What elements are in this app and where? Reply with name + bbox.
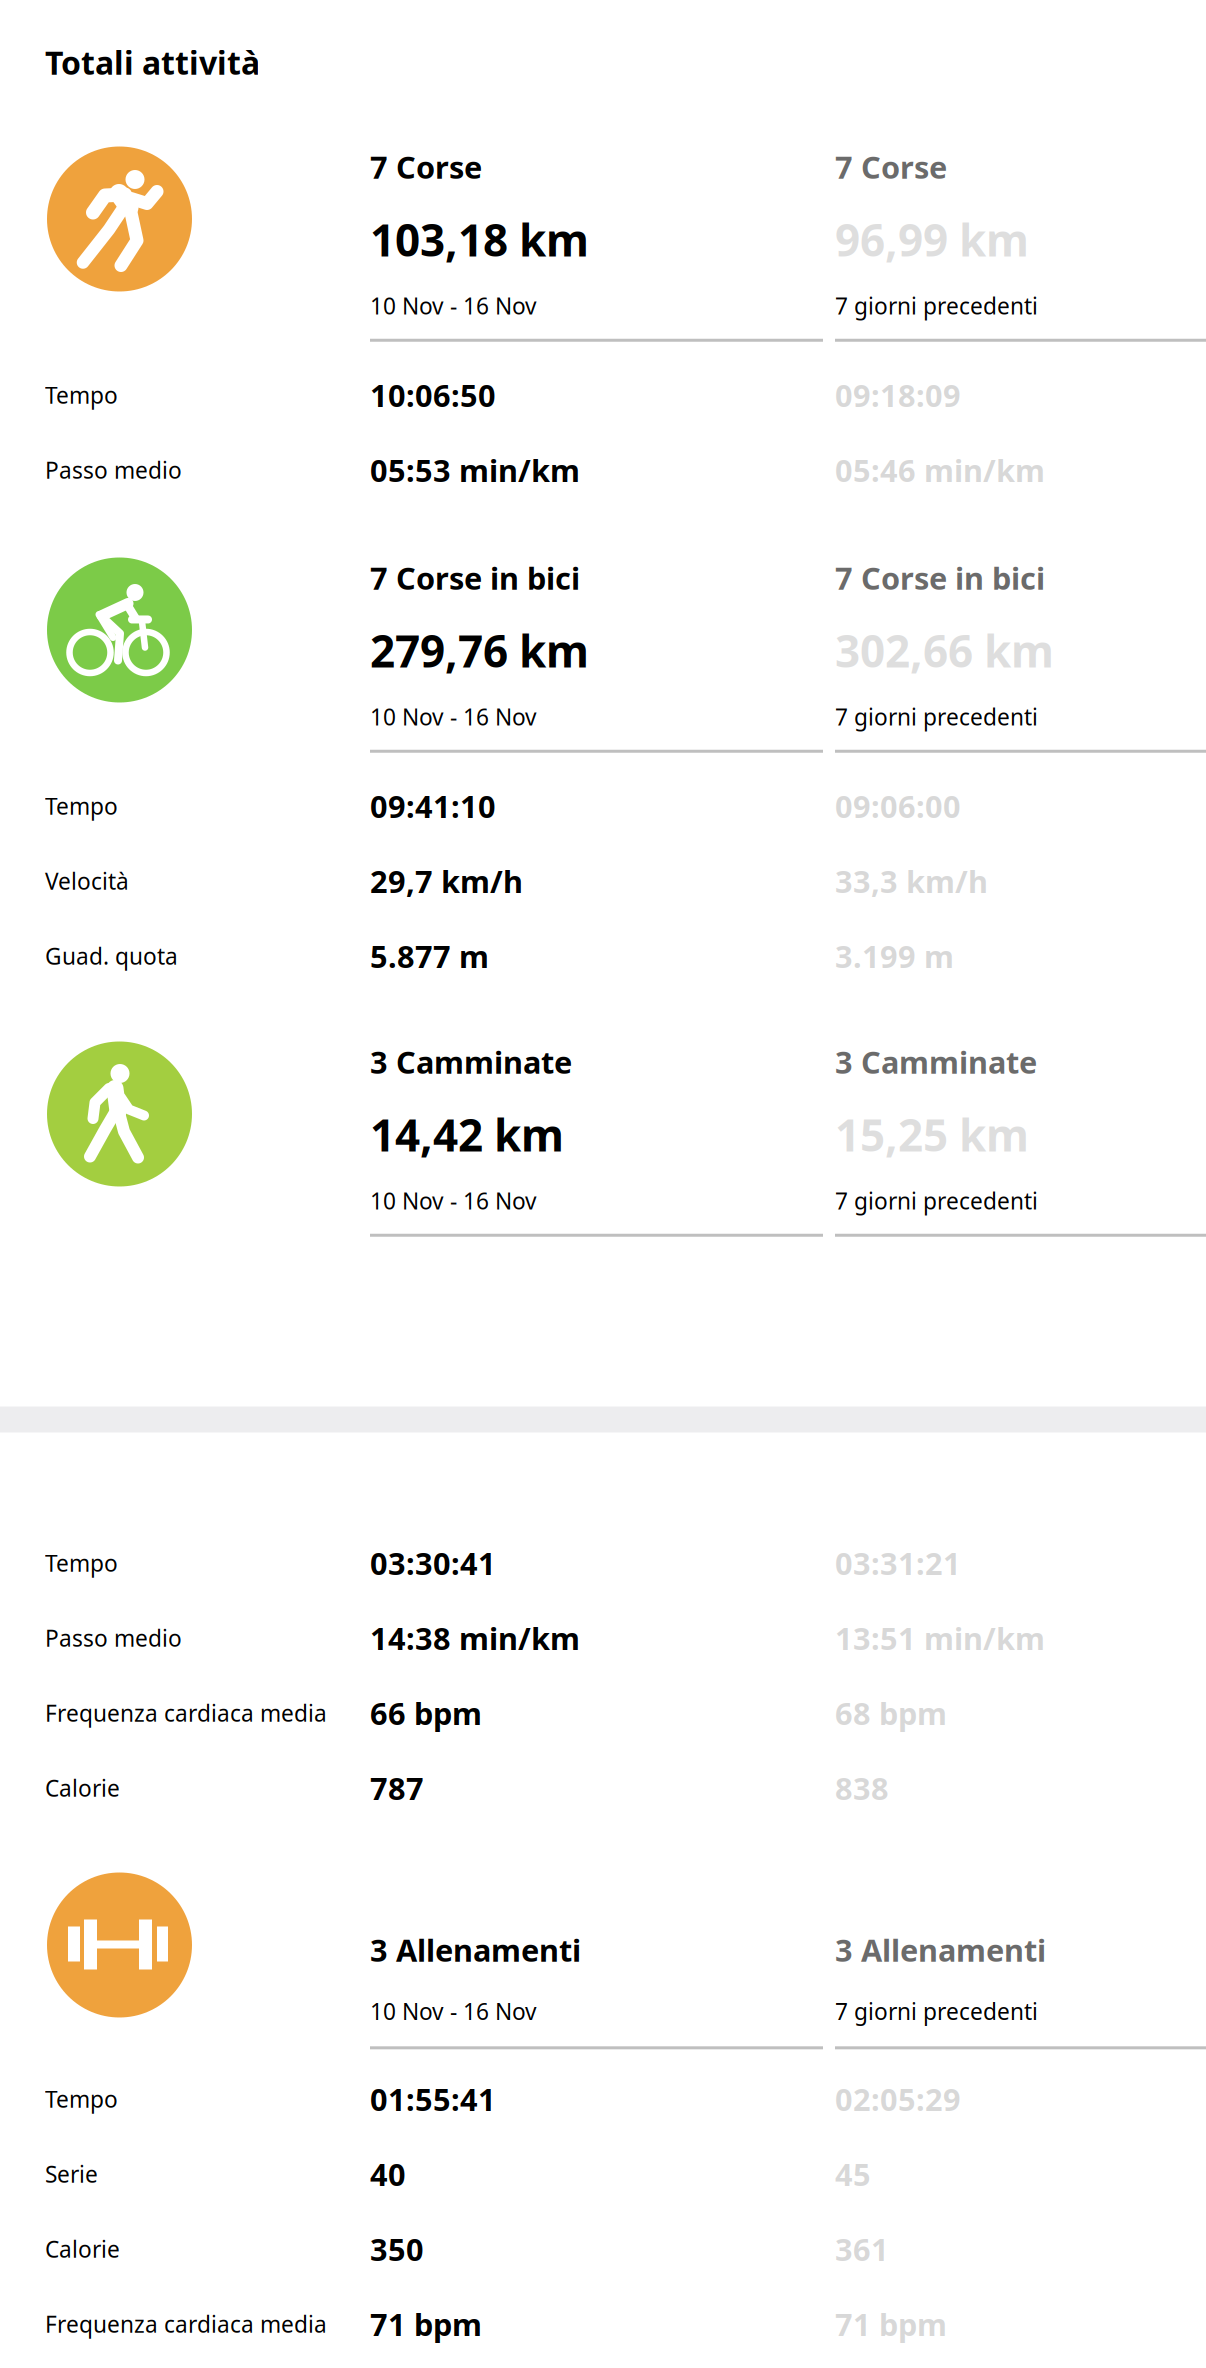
staticText: 10 Nov - 16 Nov: [370, 1996, 537, 2026]
staticText: 66 bpm: [370, 1693, 482, 1733]
staticText: 03:30:41: [370, 1543, 496, 1583]
staticText: Tempo: [45, 1548, 118, 1578]
staticText: 10:06:50: [370, 375, 496, 415]
staticText: 838: [835, 1768, 889, 1808]
staticText: 14,42 km: [370, 1105, 564, 1164]
staticText: 7 giorni precedenti: [835, 1186, 1038, 1216]
button[interactable]: Frequenza cardiaca media: [0, 2286, 1206, 2361]
button[interactable]: Guad. quota: [0, 918, 1206, 993]
button[interactable]: Calorie: [0, 2211, 1206, 2286]
staticText: 09:41:10: [370, 786, 496, 826]
staticText: 7 Corse: [370, 146, 482, 187]
staticText: Passo medio: [45, 455, 182, 485]
button[interactable]: Frequenza cardiaca media: [0, 1675, 1206, 1750]
staticText: 302,66 km: [835, 621, 1054, 680]
staticText: 29,7 km/h: [370, 861, 523, 901]
staticText: 7 Corse: [835, 146, 947, 187]
staticText: Passo medio: [45, 1623, 182, 1653]
button[interactable]: Tempo: [0, 2061, 1206, 2136]
staticText: 13:51 min/km: [835, 1618, 1045, 1658]
staticText: Tempo: [45, 380, 118, 410]
staticText: 787: [370, 1768, 424, 1808]
staticText: 103,18 km: [370, 210, 589, 269]
staticText: 33,3 km/h: [835, 861, 988, 901]
staticText: 09:18:09: [835, 375, 961, 415]
staticText: 15,25 km: [835, 1105, 1029, 1164]
staticText: 279,76 km: [370, 621, 589, 680]
button[interactable]: Passo medio: [0, 432, 1206, 507]
staticText: 71 bpm: [835, 2304, 947, 2344]
staticText: Calorie: [45, 2234, 120, 2264]
staticText: 01:55:41: [370, 2079, 496, 2119]
button[interactable]: Serie: [0, 2136, 1206, 2211]
staticText: 71 bpm: [370, 2304, 482, 2344]
staticText: 3 Allenamenti: [370, 1929, 581, 1970]
staticText: Calorie: [45, 1773, 120, 1803]
staticText: 3.199 m: [835, 936, 954, 976]
staticText: 10 Nov - 16 Nov: [370, 702, 537, 732]
staticText: 7 giorni precedenti: [835, 702, 1038, 732]
staticText: 5.877 m: [370, 936, 489, 976]
staticText: 14:38 min/km: [370, 1618, 580, 1658]
staticText: 7 Corse in bici: [370, 557, 580, 598]
staticText: Serie: [45, 2159, 98, 2189]
button[interactable]: Tempo: [0, 1525, 1206, 1600]
staticText: 361: [835, 2229, 889, 2269]
staticText: Velocità: [45, 866, 129, 896]
button[interactable]: Passo medio: [0, 1600, 1206, 1675]
button[interactable]: Tempo: [0, 357, 1206, 432]
staticText: Tempo: [45, 2084, 118, 2114]
staticText: Totali attività: [45, 41, 260, 83]
staticText: Frequenza cardiaca media: [45, 1698, 327, 1728]
staticText: 3 Camminate: [370, 1041, 572, 1082]
staticText: 05:46 min/km: [835, 450, 1045, 490]
staticText: 09:06:00: [835, 786, 961, 826]
staticText: 02:05:29: [835, 2079, 961, 2119]
staticText: Tempo: [45, 791, 118, 821]
staticText: 45: [835, 2154, 871, 2194]
button[interactable]: 7 Corse: [0, 146, 1206, 357]
staticText: 3 Camminate: [835, 1041, 1037, 1082]
staticText: Guad. quota: [45, 941, 178, 971]
staticText: 03:31:21: [835, 1543, 961, 1583]
staticText: 10 Nov - 16 Nov: [370, 291, 537, 321]
button[interactable]: 3 Allenamenti: [0, 1872, 1206, 2061]
staticText: 7 giorni precedenti: [835, 1996, 1038, 2026]
button[interactable]: Tempo: [0, 768, 1206, 843]
button[interactable]: Velocità: [0, 843, 1206, 918]
staticText: 350: [370, 2229, 424, 2269]
staticText: Frequenza cardiaca media: [45, 2309, 327, 2339]
staticText: 3 Allenamenti: [835, 1929, 1046, 1970]
button[interactable]: Calorie: [0, 1750, 1206, 1825]
staticText: 68 bpm: [835, 1693, 947, 1733]
staticText: 10 Nov - 16 Nov: [370, 1186, 537, 1216]
button[interactable]: 7 Corse in bici: [0, 557, 1206, 768]
staticText: 7 giorni precedenti: [835, 291, 1038, 321]
staticText: 7 Corse in bici: [835, 557, 1045, 598]
button[interactable]: 3 Camminate: [0, 1041, 1206, 1252]
staticText: 05:53 min/km: [370, 450, 580, 490]
staticText: 40: [370, 2154, 406, 2194]
staticText: 96,99 km: [835, 210, 1029, 269]
